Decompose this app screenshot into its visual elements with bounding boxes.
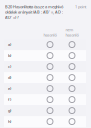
- button[interactable]: nem hasonló – f): [61, 94, 83, 105]
- button[interactable]: hasonló – f): [39, 94, 61, 105]
- staticText: g): [8, 108, 11, 113]
- button[interactable]: nem hasonló – b): [61, 50, 83, 61]
- staticText: f): [8, 97, 11, 102]
- button[interactable]: hasonló – h): [39, 116, 61, 127]
- button[interactable]: nem hasonló – a): [61, 39, 83, 50]
- button[interactable]: nem hasonló – e): [61, 83, 83, 94]
- staticText: hasonló: [43, 32, 56, 37]
- staticText: 1 point: [75, 4, 86, 9]
- staticText: a): [8, 42, 11, 47]
- button[interactable]: hasonló – a): [39, 39, 61, 50]
- staticText: h): [8, 119, 11, 124]
- staticText: e): [8, 86, 11, 91]
- staticText: c): [8, 64, 11, 69]
- button[interactable]: nem hasonló – d): [61, 72, 83, 83]
- staticText: nem hasonló: [65, 27, 78, 37]
- staticText: d): [8, 75, 11, 80]
- button[interactable]: hasonló – c): [39, 61, 61, 72]
- staticText: B20 Hasonlította össze a meghívó oldalak…: [5, 4, 63, 20]
- button[interactable]: hasonló – g): [39, 105, 61, 116]
- button[interactable]: nem hasonló – h): [61, 116, 83, 127]
- staticText: b): [8, 53, 11, 58]
- button[interactable]: hasonló – b): [39, 50, 61, 61]
- button[interactable]: hasonló – e): [39, 83, 61, 94]
- button[interactable]: nem hasonló – g): [61, 105, 83, 116]
- button[interactable]: nem hasonló – c): [61, 61, 83, 72]
- button[interactable]: hasonló – d): [39, 72, 61, 83]
